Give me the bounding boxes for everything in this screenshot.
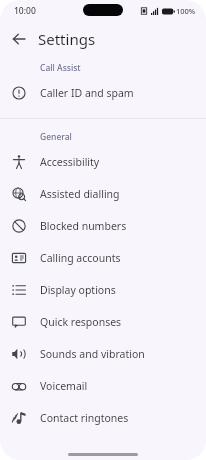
button[interactable]: Display options <box>0 274 206 306</box>
staticText: Blocked numbers <box>40 219 127 233</box>
button[interactable]: Caller ID and spam <box>0 77 206 109</box>
staticText: 10:00 <box>14 5 36 17</box>
staticText: Accessibility <box>40 155 100 169</box>
staticText: Assisted dialling <box>40 187 120 201</box>
staticText: Caller ID and spam <box>40 86 134 100</box>
staticText: Settings <box>38 29 96 49</box>
staticText: Contact ringtones <box>40 411 129 425</box>
staticText: Voicemail <box>40 379 88 393</box>
staticText: Sounds and vibration <box>40 347 145 361</box>
button[interactable]: Contact ringtones <box>0 402 206 434</box>
button[interactable]: Sounds and vibration <box>0 338 206 370</box>
staticText: General <box>40 131 72 143</box>
staticText: Display options <box>40 283 116 297</box>
button[interactable]: Assisted dialling <box>0 178 206 210</box>
button[interactable]: Back <box>5 25 33 53</box>
button[interactable]: Voicemail <box>0 370 206 402</box>
button[interactable]: Blocked numbers <box>0 210 206 242</box>
staticText: Calling accounts <box>40 251 121 265</box>
staticText: 100% <box>176 6 196 16</box>
staticText: Call Assist <box>40 62 81 74</box>
staticText: Quick responses <box>40 315 122 329</box>
button[interactable]: Accessibility <box>0 146 206 178</box>
button[interactable]: Calling accounts <box>0 242 206 274</box>
button[interactable]: Quick responses <box>0 306 206 338</box>
